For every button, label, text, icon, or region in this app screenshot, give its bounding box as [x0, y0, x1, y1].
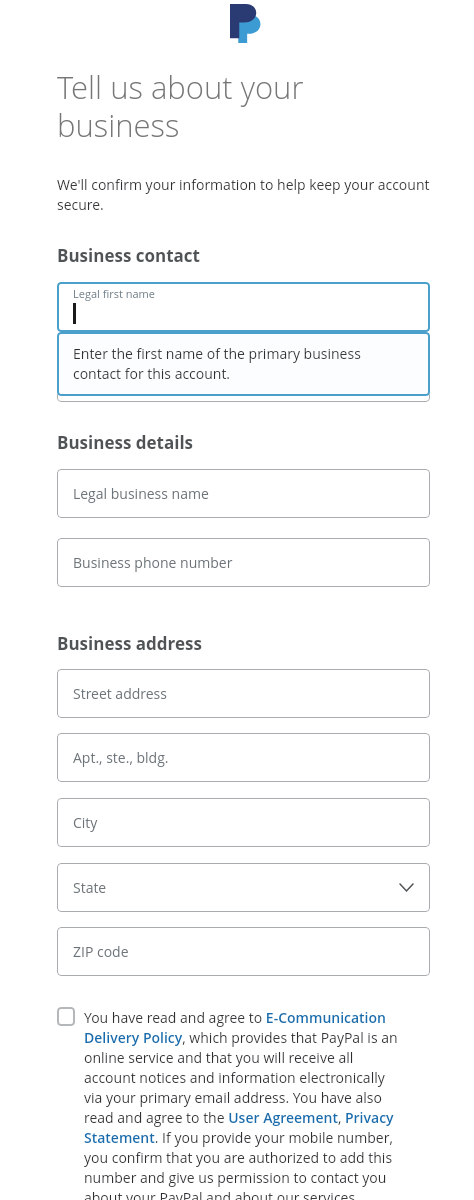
staticText: Business address — [57, 632, 202, 655]
staticText: Enter the first name of the primary busi… — [73, 344, 373, 383]
staticText: Legal first name — [73, 286, 155, 301]
staticText: Apt., ste., bldg. — [73, 748, 169, 767]
button[interactable]: Apt., ste., bldg. — [57, 733, 430, 782]
button[interactable]: ZIP code — [57, 927, 430, 976]
staticText: Business details — [57, 431, 194, 454]
button[interactable]: Street address — [57, 669, 430, 718]
button[interactable]: Business phone number — [57, 538, 430, 587]
staticText: Tell us about your business — [57, 66, 327, 146]
staticText: Business contact — [57, 244, 200, 267]
button[interactable]: State — [57, 863, 430, 912]
button[interactable]: Legal first name — [57, 282, 430, 332]
staticText: ZIP code — [73, 942, 129, 961]
staticText: We'll confirm your information to help k… — [57, 175, 430, 214]
button[interactable]: Legal business name — [57, 469, 430, 518]
staticText: Business phone number — [73, 553, 233, 572]
staticText: City — [73, 813, 98, 832]
staticText: State — [73, 878, 107, 897]
staticText: Street address — [73, 684, 167, 703]
staticText: You have read and agree to E-Communicati… — [84, 1008, 404, 1200]
staticText: Legal business name — [73, 484, 209, 503]
button[interactable]: Agree to E-Communication Delivery Policy — [57, 1007, 75, 1026]
button[interactable]: City — [57, 798, 430, 847]
